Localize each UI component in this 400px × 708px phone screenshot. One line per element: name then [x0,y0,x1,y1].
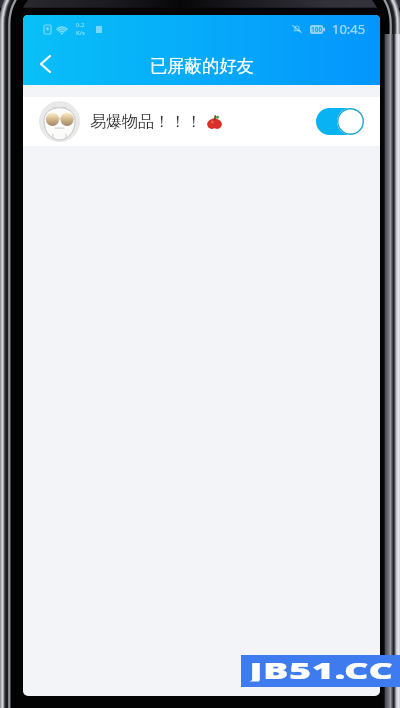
staticText: 已屏蔽的好友 [150,55,254,77]
staticText: 100 [311,25,323,34]
button[interactable]: Back [23,43,67,85]
staticText: JB51.CC [249,655,395,681]
staticText: 0.2 [76,21,85,29]
staticText: K/s [76,29,85,37]
staticText: 10:45 [332,20,366,38]
button[interactable]: 易爆物品！！！ [23,97,380,146]
button[interactable]: Unblock toggle [316,108,364,135]
staticText: 易爆物品！！！ [90,112,202,132]
